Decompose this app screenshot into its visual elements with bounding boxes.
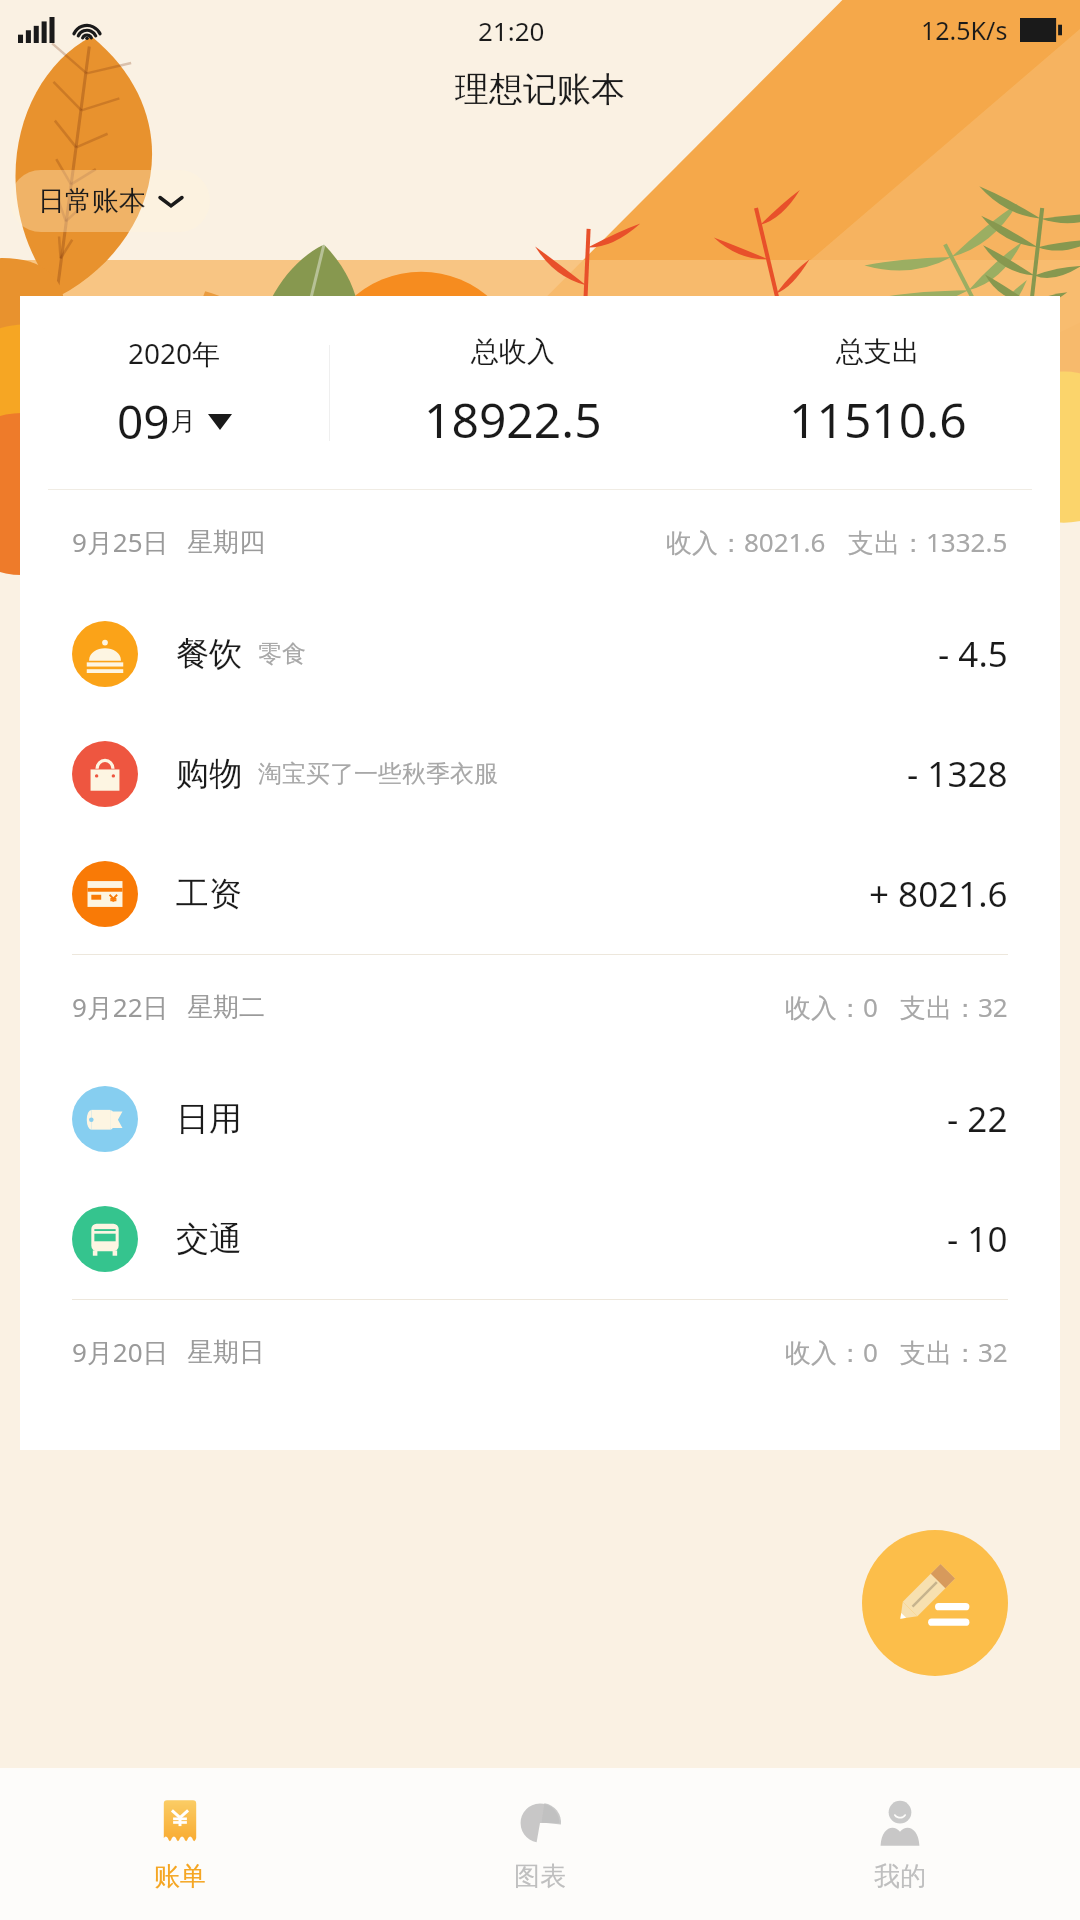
- button[interactable]: 总收入: [330, 334, 695, 452]
- staticText: 9月25日: [72, 524, 169, 560]
- staticText: 日用: [176, 1098, 242, 1140]
- button[interactable]: 餐饮: [20, 594, 1060, 714]
- button[interactable]: Add record: [862, 1530, 1008, 1676]
- staticText: 交通: [176, 1218, 242, 1260]
- staticText: 2020年: [128, 334, 221, 372]
- staticText: 9月22日: [72, 989, 169, 1025]
- staticText: 月: [170, 405, 196, 438]
- button[interactable]: 图表: [360, 1768, 720, 1920]
- staticText: 支出：1332.5: [848, 524, 1008, 560]
- staticText: 12.5K/s: [921, 13, 1008, 47]
- button[interactable]: 2020年: [20, 334, 329, 453]
- staticText: 支出：32: [900, 1334, 1008, 1370]
- staticText: 餐饮: [176, 633, 242, 675]
- button[interactable]: 账单: [0, 1768, 360, 1920]
- staticText: 收入：0: [785, 1334, 878, 1370]
- staticText: 淘宝买了一些秋季衣服: [258, 759, 498, 789]
- staticText: 收入：0: [785, 989, 878, 1025]
- staticText: 09: [117, 390, 170, 453]
- button[interactable]: 工资: [20, 834, 1060, 954]
- staticText: - 10: [947, 1215, 1008, 1263]
- staticText: 工资: [176, 873, 242, 915]
- staticText: 总支出: [836, 334, 920, 369]
- button[interactable]: 交通: [20, 1179, 1060, 1299]
- staticText: 我的: [874, 1860, 926, 1893]
- staticText: 支出：32: [900, 989, 1008, 1025]
- staticText: 理想记账本: [455, 68, 625, 111]
- staticText: - 4.5: [938, 630, 1008, 678]
- staticText: 总收入: [471, 334, 555, 369]
- button[interactable]: 我的: [720, 1768, 1080, 1920]
- staticText: 11510.6: [789, 387, 967, 452]
- staticText: + 8021.6: [869, 870, 1008, 918]
- staticText: 21:20: [478, 13, 545, 48]
- staticText: 购物: [176, 753, 242, 795]
- button[interactable]: 日用: [20, 1059, 1060, 1179]
- staticText: 星期日: [187, 1336, 265, 1369]
- staticText: 18922.5: [424, 387, 602, 452]
- staticText: 图表: [514, 1860, 566, 1893]
- staticText: - 1328: [907, 750, 1008, 798]
- staticText: 星期二: [187, 991, 265, 1024]
- button[interactable]: 总支出: [695, 334, 1060, 452]
- staticText: 收入：8021.6: [666, 524, 826, 560]
- staticText: 日常账本: [38, 184, 146, 218]
- staticText: 零食: [258, 639, 306, 669]
- staticText: 9月20日: [72, 1334, 169, 1370]
- button[interactable]: 购物: [20, 714, 1060, 834]
- staticText: 账单: [154, 1860, 206, 1893]
- staticText: - 22: [947, 1095, 1008, 1143]
- button[interactable]: 日常账本: [10, 170, 210, 232]
- staticText: 星期四: [187, 526, 265, 559]
